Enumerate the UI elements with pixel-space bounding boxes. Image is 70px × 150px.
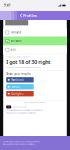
button[interactable]: Eric Scott [3,36,67,45]
staticText: eric [10,48,15,51]
staticText: How did you do compared to others? [6,56,31,58]
staticText: Test your knowledge and beat the average… [6,67,41,68]
staticText: 9:41 [4,4,11,7]
staticText: Profiles helps you index and organise th… [3,141,40,143]
staticText: follow — get started now and build your … [3,143,35,145]
staticText: Daily News — top stories [13,106,28,108]
staticText: Holland [10,31,21,34]
button[interactable]: Google+ [6,91,34,96]
staticText: the stories everyone is talking about th… [6,112,36,114]
button[interactable]: Twitter [6,84,34,89]
button[interactable]: Holland [3,28,67,36]
button[interactable]: Facebook [6,77,34,83]
staticText: Twitter [11,85,20,88]
staticText: Quiz provided by our partners [24,102,46,103]
staticText: Eric Scott [10,39,21,43]
staticText: Profiles [23,13,37,18]
staticText: I got 18 of 30 right [6,58,50,66]
staticText: Facebook [11,78,23,82]
button[interactable]: eric [3,45,67,54]
staticText: Share your results [6,72,30,76]
button[interactable]: Profiles helps you index and organise th… [0,136,70,150]
staticText: Google+ [11,92,24,95]
button[interactable]: Back [19,11,23,20]
staticText: Find out what the world is reading with … [6,109,42,111]
